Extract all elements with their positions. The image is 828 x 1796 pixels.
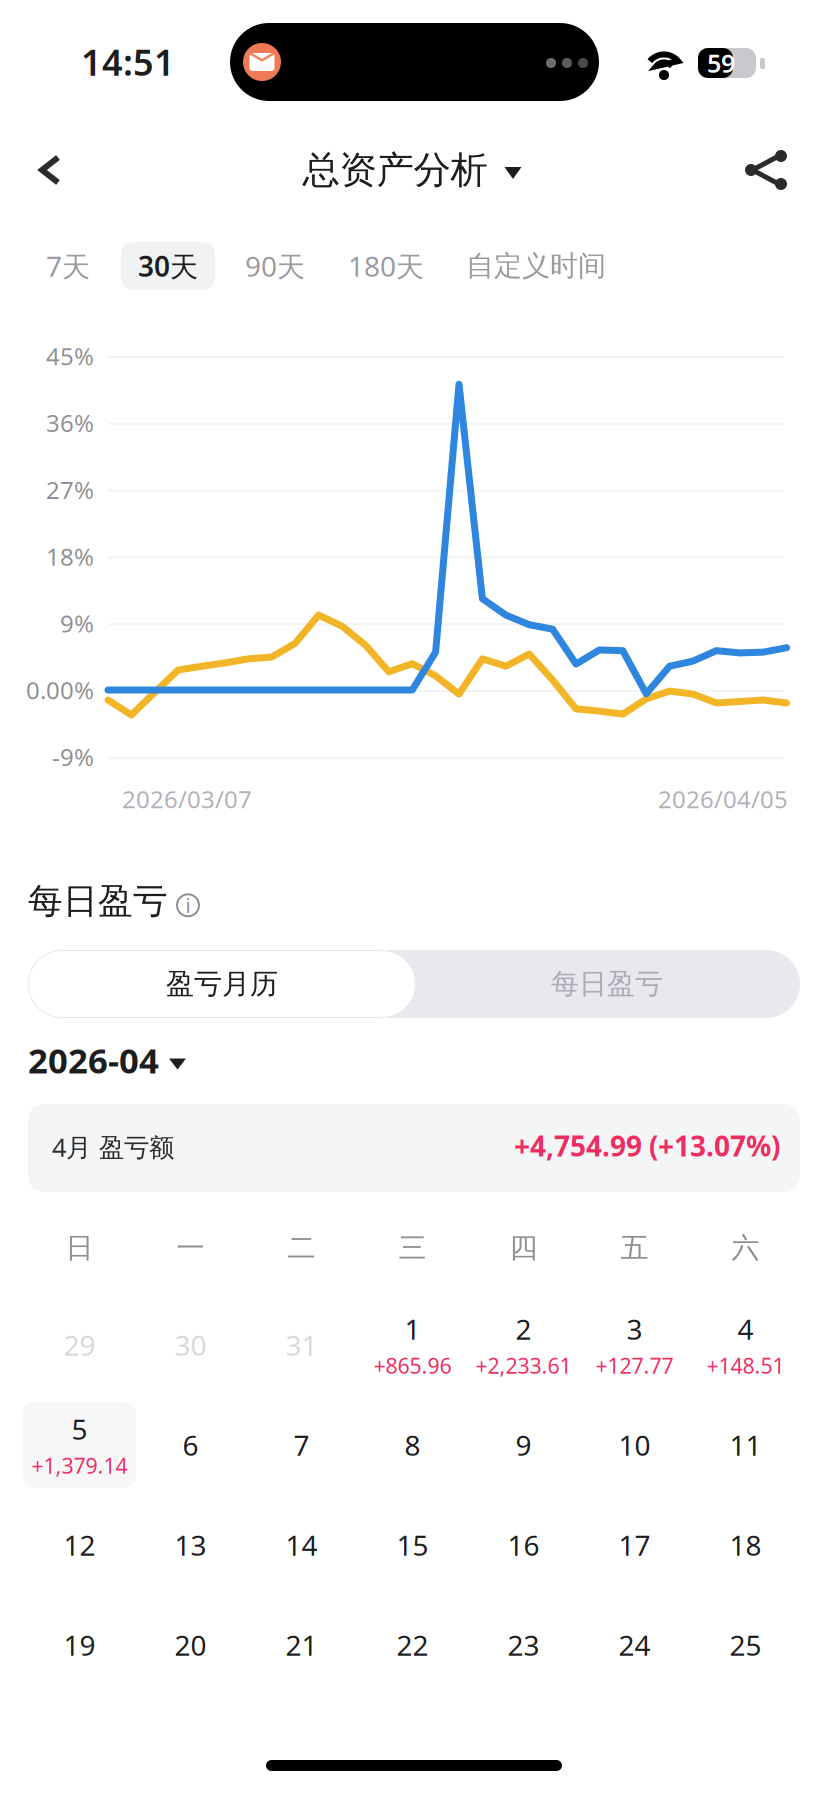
staticText: 30天 xyxy=(138,247,198,285)
button[interactable]: 11 xyxy=(690,1402,801,1488)
staticText: +865.96 xyxy=(373,1351,451,1380)
button[interactable]: 9 xyxy=(468,1402,579,1488)
staticText: 9% xyxy=(60,607,94,639)
staticText: 18 xyxy=(729,1526,761,1564)
staticText: 2026/04/05 xyxy=(658,783,788,815)
staticText: 19 xyxy=(63,1626,95,1664)
button[interactable]: 10 xyxy=(579,1402,690,1488)
staticText: 14 xyxy=(285,1526,317,1564)
staticText: 180天 xyxy=(348,247,424,285)
staticText: +2,233.61 xyxy=(475,1351,571,1380)
staticText: 4 xyxy=(737,1310,753,1347)
button[interactable]: 7 xyxy=(246,1402,357,1488)
button[interactable]: 15 xyxy=(357,1502,468,1588)
staticText: 1 xyxy=(404,1310,420,1347)
button[interactable]: 22 xyxy=(357,1602,468,1688)
button[interactable]: 19 xyxy=(24,1602,135,1688)
staticText: i xyxy=(185,892,190,919)
button[interactable]: 4 xyxy=(690,1302,801,1388)
button[interactable]: 90天 xyxy=(224,233,326,299)
staticText: +4,754.99 (+13.07%) xyxy=(514,1127,780,1164)
staticText: 20 xyxy=(174,1626,206,1664)
staticText: 总资产分析 xyxy=(302,147,487,193)
staticText: 5 xyxy=(71,1410,87,1447)
button[interactable]: 13 xyxy=(135,1502,246,1588)
staticText: 2026-04 xyxy=(28,1037,159,1083)
staticText: 3 xyxy=(626,1310,642,1347)
button[interactable]: 180天 xyxy=(326,233,446,299)
button[interactable]: 3 xyxy=(579,1302,690,1388)
staticText: 10 xyxy=(618,1426,650,1464)
staticText: -9% xyxy=(52,741,94,773)
button[interactable]: Share xyxy=(726,130,806,210)
button[interactable]: 29 xyxy=(24,1302,135,1388)
button[interactable]: 20 xyxy=(135,1602,246,1688)
staticText: 14:51 xyxy=(81,38,175,86)
staticText: 2026/03/07 xyxy=(122,783,252,815)
staticText: +127.77 xyxy=(595,1351,673,1380)
button[interactable]: 7天 xyxy=(24,233,112,299)
staticText: 18% xyxy=(46,540,94,572)
button[interactable]: 18 xyxy=(690,1502,801,1588)
button[interactable]: 6 xyxy=(135,1402,246,1488)
staticText: 31 xyxy=(285,1326,317,1364)
button[interactable]: 2 xyxy=(468,1302,579,1388)
staticText: 15 xyxy=(396,1526,428,1564)
staticText: 7 xyxy=(293,1426,309,1464)
staticText: 自定义时间 xyxy=(466,249,606,283)
staticText: 24 xyxy=(618,1626,650,1664)
button[interactable]: 自定义时间 xyxy=(446,235,626,297)
staticText: 23 xyxy=(507,1626,539,1664)
button[interactable]: 5 xyxy=(24,1402,135,1488)
staticText: 90天 xyxy=(245,247,305,285)
staticText: 4月 盈亏额 xyxy=(52,1130,174,1164)
staticText: 三 xyxy=(398,1231,426,1265)
button[interactable]: 31 xyxy=(246,1302,357,1388)
staticText: 22 xyxy=(396,1626,428,1664)
staticText: 0.00% xyxy=(26,674,94,706)
button[interactable]: 1 xyxy=(357,1302,468,1388)
button[interactable]: 30天 xyxy=(112,228,224,304)
staticText: 日 xyxy=(65,1231,93,1265)
staticText: +1,379.14 xyxy=(31,1451,127,1480)
staticText: 25 xyxy=(729,1626,761,1664)
staticText: 17 xyxy=(618,1526,650,1564)
button[interactable]: 24 xyxy=(579,1602,690,1688)
staticText: 45% xyxy=(46,340,94,372)
staticText: 16 xyxy=(507,1526,539,1564)
button[interactable]: 12 xyxy=(24,1502,135,1588)
staticText: 6 xyxy=(182,1426,198,1464)
staticText: 2 xyxy=(515,1310,531,1347)
button[interactable]: 盈亏月历 xyxy=(29,951,415,1017)
staticText: +148.51 xyxy=(706,1351,784,1380)
staticText: 12 xyxy=(63,1526,95,1564)
staticText: 盈亏月历 xyxy=(166,967,278,1001)
staticText: 36% xyxy=(46,407,94,439)
button[interactable]: 16 xyxy=(468,1502,579,1588)
staticText: 四 xyxy=(509,1231,537,1265)
button[interactable]: 23 xyxy=(468,1602,579,1688)
staticText: 8 xyxy=(404,1426,420,1464)
button[interactable]: 总资产分析 xyxy=(292,130,532,210)
button[interactable]: Back xyxy=(10,130,90,210)
button[interactable]: 30 xyxy=(135,1302,246,1388)
button[interactable]: 25 xyxy=(690,1602,801,1688)
staticText: 21 xyxy=(285,1626,317,1664)
button[interactable]: 14 xyxy=(246,1502,357,1588)
button[interactable]: 2026-04 xyxy=(28,1035,186,1085)
staticText: 每日盈亏 xyxy=(551,967,663,1001)
staticText: 11 xyxy=(729,1426,761,1464)
staticText: 二 xyxy=(287,1231,315,1265)
staticText: 30 xyxy=(174,1326,206,1364)
staticText: 六 xyxy=(731,1231,759,1265)
staticText: 9 xyxy=(515,1426,531,1464)
button[interactable]: 每日盈亏 xyxy=(414,951,800,1017)
staticText: 7天 xyxy=(46,247,90,285)
staticText: 27% xyxy=(46,474,94,506)
button[interactable]: 17 xyxy=(579,1502,690,1588)
button[interactable]: 8 xyxy=(357,1402,468,1488)
staticText: 一 xyxy=(176,1231,204,1265)
staticText: 每日盈亏 xyxy=(28,880,168,923)
button[interactable]: 21 xyxy=(246,1602,357,1688)
staticText: 29 xyxy=(63,1326,95,1364)
